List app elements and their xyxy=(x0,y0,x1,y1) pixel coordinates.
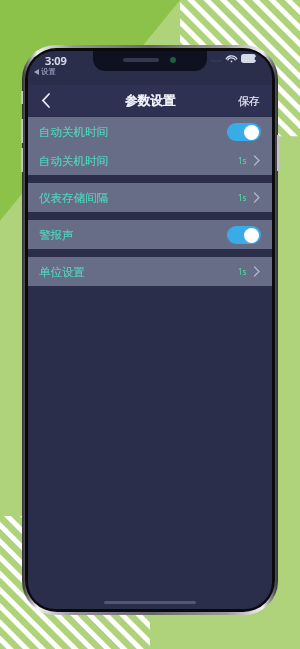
staticText: 自动关机时间 xyxy=(39,154,108,168)
button[interactable]: 保存 xyxy=(226,88,272,114)
staticText: 单位设置 xyxy=(39,265,85,279)
staticText: 1s xyxy=(238,192,247,203)
button[interactable]: 仪表存储间隔 xyxy=(28,183,272,212)
button[interactable]: 返回 设置 xyxy=(34,67,56,76)
button[interactable]: 自动关机时间 开关 xyxy=(227,123,261,141)
staticText: 参数设置 xyxy=(125,93,175,109)
button[interactable]: 警报声 xyxy=(28,220,272,249)
staticText: 警报声 xyxy=(39,228,74,242)
staticText: 1s xyxy=(238,266,247,277)
button[interactable]: 自动关机时间 xyxy=(28,146,272,175)
staticText: 设置 xyxy=(41,67,56,76)
button[interactable]: 警报声 开关 xyxy=(227,226,261,244)
staticText: 仪表存储间隔 xyxy=(39,191,108,205)
button[interactable]: 返回 xyxy=(28,85,62,116)
staticText: 自动关机时间 xyxy=(39,125,108,139)
button[interactable]: 单位设置 xyxy=(28,257,272,286)
staticText: 保存 xyxy=(238,94,260,108)
button[interactable]: 自动关机时间 xyxy=(28,117,272,146)
staticText: 1s xyxy=(238,155,247,166)
staticText: 3:09 xyxy=(45,53,67,68)
